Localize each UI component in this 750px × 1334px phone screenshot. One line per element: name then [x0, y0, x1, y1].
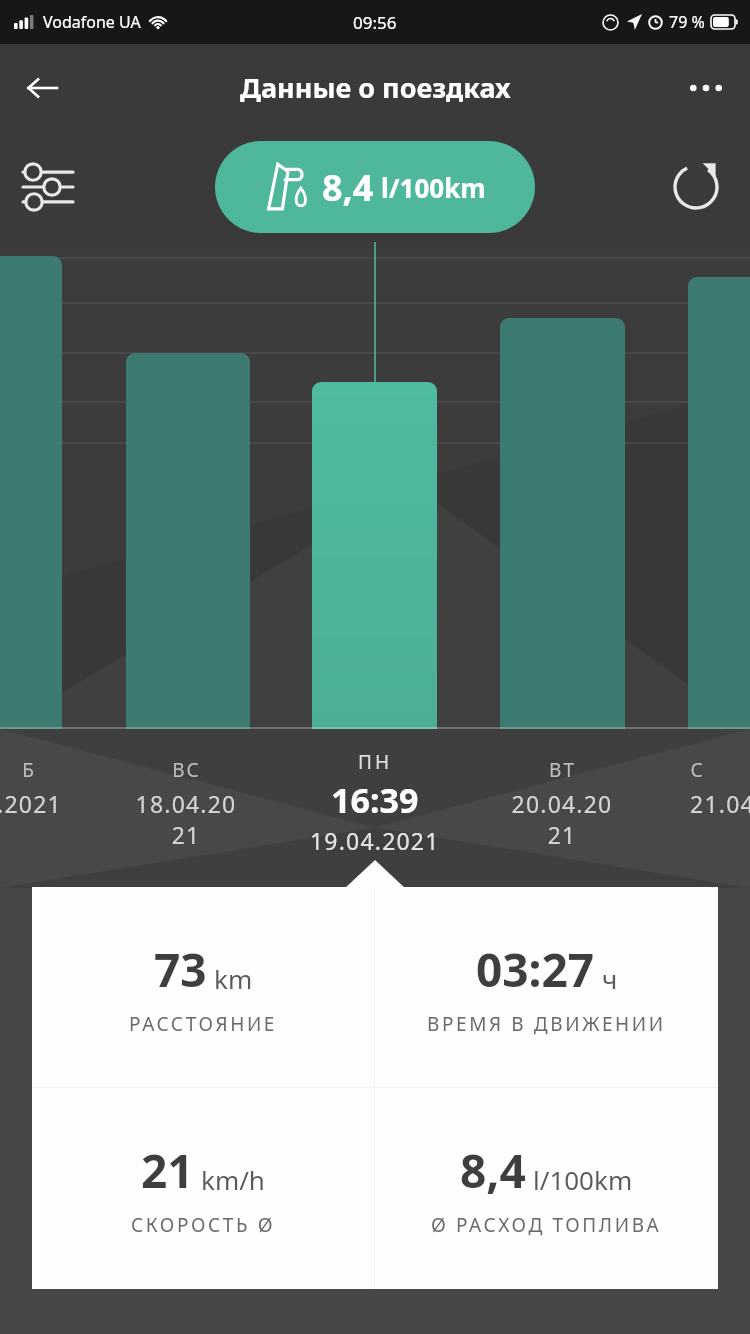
staticText: ВРЕМЯ В ДВИЖЕНИИ — [427, 1011, 666, 1037]
staticText: km/h — [201, 1162, 265, 1197]
staticText: l/100km — [381, 170, 486, 205]
button[interactable]: 73 — [32, 887, 374, 1087]
button[interactable]: 21 — [32, 1088, 374, 1289]
staticText: 8,4 — [322, 163, 374, 212]
staticText: Vodafone UA — [43, 11, 141, 33]
button[interactable]: Back — [14, 60, 70, 116]
staticText: ПН — [358, 749, 393, 775]
staticText: С — [690, 757, 705, 783]
staticText: l/100km — [533, 1162, 633, 1197]
staticText: СКОРОСТЬ Ø — [131, 1212, 276, 1238]
staticText: 79 % — [669, 11, 705, 33]
staticText: 20.04.2021 — [507, 788, 617, 850]
staticText: ВС — [172, 757, 201, 783]
staticText: 09:56 — [353, 11, 397, 34]
button[interactable]: 8,4 — [375, 1088, 718, 1289]
staticText: 16:39 — [331, 777, 419, 823]
staticText: Ø РАСХОД ТОПЛИВА — [431, 1212, 662, 1238]
button[interactable]: 8,4 — [215, 141, 535, 233]
staticText: 18.04.2021 — [131, 788, 241, 850]
staticText: 21.04 — [690, 788, 750, 819]
staticText: .2021 — [0, 788, 62, 819]
staticText: Б — [22, 757, 36, 783]
button[interactable]: Refresh — [664, 155, 728, 219]
staticText: ВТ — [549, 757, 576, 783]
staticText: ч — [602, 961, 618, 996]
staticText: 03:27 — [476, 938, 595, 1001]
staticText: 19.04.2021 — [310, 825, 440, 856]
button[interactable]: More options — [678, 60, 734, 116]
staticText: 21 — [141, 1139, 194, 1202]
staticText: 73 — [154, 938, 207, 1001]
staticText: Данные о поездках — [240, 69, 511, 106]
staticText: km — [214, 961, 253, 996]
button[interactable]: 03:27 — [375, 887, 718, 1087]
staticText: 8,4 — [460, 1139, 526, 1202]
staticText: РАССТОЯНИЕ — [129, 1011, 278, 1037]
button[interactable]: Filter — [16, 155, 80, 219]
